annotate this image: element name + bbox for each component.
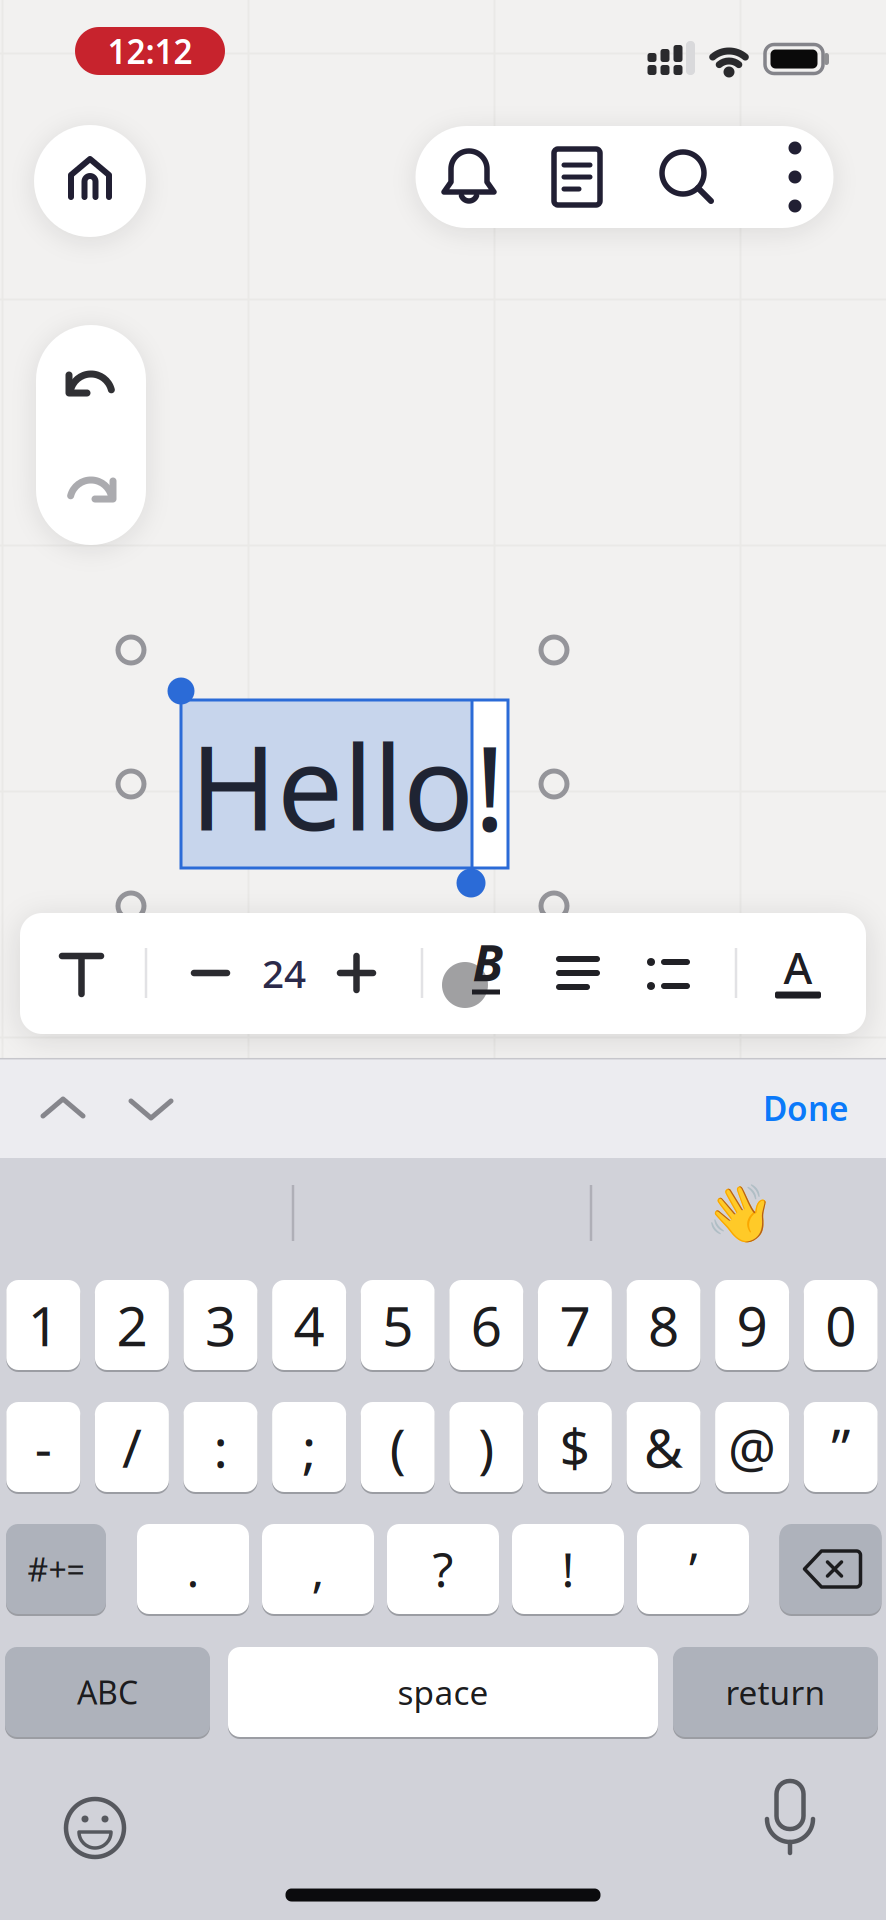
button[interactable] — [765, 127, 825, 227]
staticText: & — [644, 1412, 683, 1482]
button[interactable] — [532, 127, 622, 227]
button[interactable]: 6 — [449, 1278, 523, 1372]
button[interactable]: ) — [449, 1400, 523, 1494]
button[interactable]: ’ — [637, 1522, 749, 1616]
staticText: 24 — [262, 947, 306, 999]
button[interactable] — [41, 333, 141, 433]
staticText: 8 — [648, 1289, 679, 1361]
button[interactable]: Done — [726, 1073, 886, 1143]
staticText: ! — [561, 1537, 574, 1601]
button[interactable]: 9 — [715, 1278, 789, 1372]
button[interactable]: ? — [387, 1522, 499, 1616]
staticText: ) — [478, 1412, 494, 1482]
staticText: ? — [432, 1537, 453, 1601]
button[interactable] — [41, 933, 121, 1013]
staticText: / — [122, 1412, 142, 1482]
button[interactable]: , — [262, 1522, 374, 1616]
staticText: ’ — [689, 1537, 697, 1601]
staticText: ; — [302, 1412, 316, 1482]
staticText: 4 — [294, 1289, 325, 1361]
button[interactable]: / — [95, 1400, 169, 1494]
button[interactable]: ( — [361, 1400, 435, 1494]
button[interactable]: 5 — [361, 1278, 435, 1372]
staticText: 👋 — [705, 1182, 775, 1246]
button[interactable] — [318, 933, 396, 1013]
button[interactable] — [23, 1071, 103, 1141]
button[interactable]: A — [758, 931, 838, 1011]
button[interactable]: @ — [715, 1400, 789, 1494]
button[interactable]: 0 — [804, 1278, 878, 1372]
button[interactable]: #+= — [6, 1522, 106, 1616]
staticText: 0 — [825, 1289, 856, 1361]
staticText: 9 — [737, 1289, 768, 1361]
staticText: ” — [831, 1412, 850, 1482]
button[interactable] — [41, 439, 141, 539]
button[interactable]: B — [446, 930, 526, 1010]
staticText: : — [213, 1412, 227, 1482]
button[interactable] — [628, 933, 708, 1013]
staticText: 3 — [205, 1289, 236, 1361]
button[interactable]: : — [183, 1400, 257, 1494]
staticText: ABC — [77, 1671, 138, 1713]
staticText: , — [311, 1537, 324, 1601]
staticText: ( — [390, 1412, 406, 1482]
staticText: $ — [559, 1412, 590, 1482]
staticText: 6 — [471, 1289, 502, 1361]
button[interactable] — [50, 1783, 140, 1873]
button[interactable] — [424, 127, 514, 227]
button[interactable]: 2 — [95, 1278, 169, 1372]
button[interactable]: $ — [538, 1400, 612, 1494]
staticText: space — [397, 1670, 488, 1714]
staticText: return — [725, 1670, 825, 1714]
staticText: 12:12 — [107, 29, 192, 73]
button[interactable]: 7 — [538, 1278, 612, 1372]
button[interactable]: ! — [512, 1522, 624, 1616]
button[interactable]: 4 — [272, 1278, 346, 1372]
staticText: . — [186, 1537, 199, 1601]
staticText: 5 — [382, 1289, 413, 1361]
staticText: Hello! — [190, 707, 506, 863]
button[interactable] — [34, 125, 146, 237]
button[interactable]: 1 — [6, 1278, 80, 1372]
staticText: @ — [728, 1412, 776, 1482]
button[interactable]: ; — [272, 1400, 346, 1494]
button[interactable]: return — [673, 1645, 878, 1739]
button[interactable]: ” — [804, 1400, 878, 1494]
button[interactable] — [779, 1522, 881, 1616]
staticText: 1 — [28, 1289, 59, 1361]
button[interactable] — [537, 933, 617, 1013]
button[interactable]: 3 — [183, 1278, 257, 1372]
staticText: 7 — [559, 1289, 590, 1361]
button[interactable] — [111, 1073, 191, 1143]
button[interactable]: 8 — [626, 1278, 700, 1372]
button[interactable]: 👋 — [690, 1179, 790, 1249]
button[interactable]: & — [626, 1400, 700, 1494]
button[interactable]: . — [137, 1522, 249, 1616]
button[interactable]: space — [228, 1645, 658, 1739]
staticText: B — [472, 929, 503, 995]
button[interactable] — [641, 127, 731, 227]
button[interactable]: 24 — [251, 933, 317, 1013]
button[interactable]: - — [6, 1400, 80, 1494]
staticText: - — [35, 1412, 52, 1482]
staticText: Done — [763, 1086, 849, 1130]
staticText: #+= — [27, 1548, 84, 1590]
button[interactable] — [172, 933, 250, 1013]
staticText: A — [783, 938, 812, 996]
button[interactable] — [745, 1779, 835, 1869]
staticText: 2 — [116, 1289, 147, 1361]
button[interactable]: ABC — [5, 1645, 210, 1739]
